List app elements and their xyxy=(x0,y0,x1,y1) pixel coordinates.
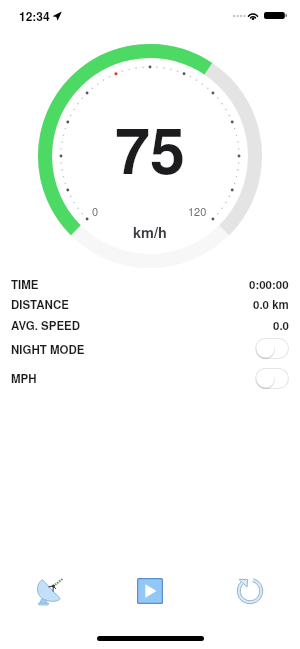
staticText: TIME xyxy=(11,276,39,292)
button[interactable]: NIGHT MODE xyxy=(11,335,289,362)
staticText: 0 xyxy=(92,203,99,219)
staticText: 75 xyxy=(115,103,186,193)
button[interactable]: DISTANCE xyxy=(11,294,289,314)
staticText: km/h xyxy=(133,222,167,243)
staticText: NIGHT MODE xyxy=(11,341,85,357)
button[interactable]: GPS satellite xyxy=(0,560,100,622)
button[interactable]: Reset xyxy=(200,560,300,622)
button[interactable]: TIME xyxy=(11,273,289,294)
staticText: 0.0 xyxy=(273,317,289,333)
button[interactable]: Start xyxy=(100,560,200,622)
staticText: DISTANCE xyxy=(11,296,69,312)
staticText: 12:34 xyxy=(19,7,50,24)
button[interactable]: AVG. SPEED xyxy=(11,314,289,335)
staticText: 0:00:00 xyxy=(249,276,289,292)
staticText: 0.0 km xyxy=(253,296,289,312)
button[interactable]: MPH xyxy=(11,362,289,394)
staticText: AVG. SPEED xyxy=(11,317,81,333)
staticText: MPH xyxy=(11,370,37,386)
staticText: 120 xyxy=(188,203,207,219)
